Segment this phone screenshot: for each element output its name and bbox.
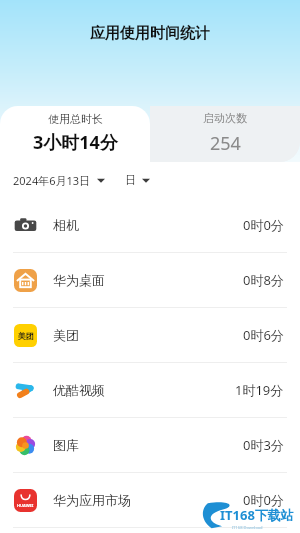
button[interactable]: 华为桌面 xyxy=(0,253,300,308)
staticText: 应用使用时间统计 xyxy=(90,24,210,43)
staticText: 2024年6月13日 xyxy=(13,173,91,188)
staticText: 3小时14分 xyxy=(33,130,118,155)
staticText: HUAWEI xyxy=(17,503,34,508)
staticText: 美团 xyxy=(18,331,34,341)
staticText: 美团 xyxy=(53,327,79,343)
button[interactable]: 美团 xyxy=(0,308,300,363)
staticText: 0时0分 xyxy=(243,216,284,234)
staticText: 华为桌面 xyxy=(53,272,105,288)
other: 华为桌面 xyxy=(14,269,37,292)
staticText: 0时3分 xyxy=(243,436,284,454)
staticText: 1时19分 xyxy=(235,381,284,399)
staticText: 优酷视频 xyxy=(53,382,105,398)
button[interactable]: 图库 xyxy=(0,418,300,473)
staticText: IT168下载站 xyxy=(220,506,294,524)
staticText: 启动次数 xyxy=(203,111,247,125)
staticText: 华为应用市场 xyxy=(53,492,131,508)
button[interactable]: 优酷视频 xyxy=(0,363,300,418)
staticText: 254 xyxy=(210,131,241,156)
other: 美团 xyxy=(14,324,37,347)
button[interactable]: 华为应用市场 xyxy=(0,473,300,528)
other: 图库 xyxy=(14,434,37,457)
other: 优酷视频 xyxy=(14,379,37,402)
staticText: 相机 xyxy=(53,217,79,233)
staticText: 日 xyxy=(125,173,136,187)
staticText: 使用总时长 xyxy=(48,112,103,126)
staticText: 0时0分 xyxy=(243,491,284,509)
button[interactable]: 启动次数 xyxy=(150,106,300,162)
button[interactable]: 2024年6月13日 xyxy=(13,169,105,192)
staticText: IT168 Download xyxy=(232,525,263,530)
staticText: 0时6分 xyxy=(243,326,284,344)
button[interactable]: 相机 xyxy=(0,198,300,253)
other: 相机 xyxy=(14,214,37,237)
staticText: 图库 xyxy=(53,437,79,453)
other: 华为应用市场 xyxy=(14,489,37,512)
button[interactable]: 日 xyxy=(125,169,150,191)
staticText: 0时8分 xyxy=(243,271,284,289)
button[interactable]: 使用总时长 xyxy=(0,106,150,162)
